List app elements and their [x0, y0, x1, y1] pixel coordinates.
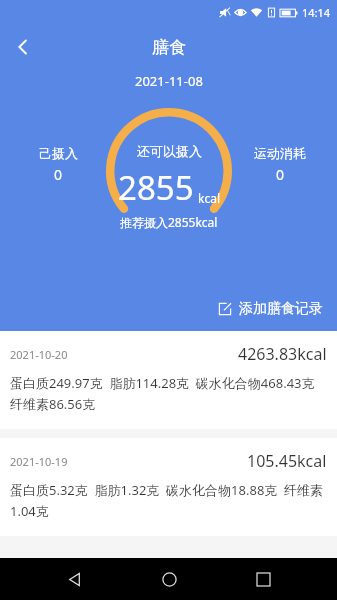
staticText: 2021-10-19 [10, 454, 68, 469]
staticText: 2855 [118, 165, 194, 210]
staticText: 0 [54, 165, 63, 184]
staticText: 0 [276, 165, 285, 184]
button[interactable]: 2021-10-20 [0, 331, 337, 429]
staticText: 4263.83kcal [238, 343, 327, 365]
button[interactable]: Back [53, 558, 95, 600]
staticText: 105.45kcal [247, 450, 327, 472]
staticText: 运动消耗 [254, 145, 306, 161]
staticText: 己摄入 [39, 145, 78, 161]
staticText: 蛋白质5.32克 脂肪1.32克 碳水化合物18.88克 纤维素1.04克 [10, 481, 327, 520]
staticText: 推荐摄入2855kcal [120, 214, 218, 230]
staticText: 添加膳食记录 [239, 300, 323, 318]
button[interactable]: 2021-10-19 [0, 438, 337, 536]
staticText: kcal [198, 190, 220, 206]
button[interactable]: Back [0, 24, 46, 70]
staticText: 14:14 [302, 5, 331, 20]
button[interactable]: Home [148, 558, 190, 600]
staticText: 蛋白质249.97克 脂肪114.28克 碳水化合物468.43克 纤维素86.… [10, 374, 327, 413]
button[interactable]: Recent apps [242, 558, 284, 600]
staticText: 2021-11-08 [135, 72, 203, 90]
staticText: 2021-10-20 [10, 347, 68, 362]
staticText: 膳食 [152, 37, 186, 58]
button[interactable]: 添加膳食记录 [204, 294, 337, 324]
staticText: 还可以摄入 [137, 143, 202, 159]
